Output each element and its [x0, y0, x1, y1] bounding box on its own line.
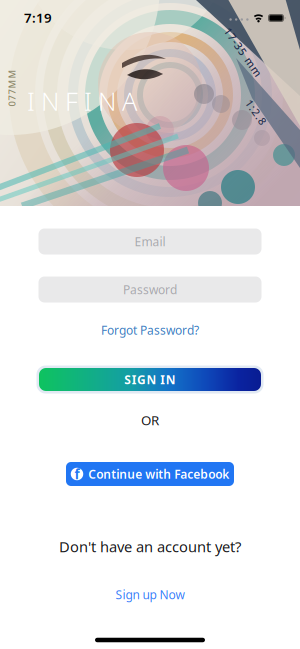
staticText: Sign up Now	[115, 586, 184, 602]
staticText: Email	[134, 233, 165, 249]
staticText: Forgot Password?	[101, 322, 199, 338]
staticText: 077MM	[0, 82, 30, 94]
staticText: SIGN IN	[124, 371, 176, 387]
button[interactable]: Email	[38, 228, 261, 254]
staticText: OR	[141, 411, 159, 429]
staticText: Continue with Facebook	[88, 466, 229, 482]
button[interactable]: SIGN IN	[36, 365, 263, 393]
staticText: 7:19	[24, 9, 52, 26]
button[interactable]: Forgot Password?	[101, 322, 199, 338]
staticText: f	[74, 465, 79, 483]
button[interactable]: Password	[38, 276, 261, 302]
button[interactable]: Sign up Now	[115, 586, 184, 602]
staticText: Password	[123, 281, 177, 297]
staticText: 1:2.8	[242, 105, 270, 119]
staticText: 17-35 mm	[214, 45, 271, 59]
staticText: Don't have an account yet?	[59, 537, 241, 556]
staticText: INFINA	[27, 84, 137, 118]
button[interactable]: f	[66, 462, 234, 486]
